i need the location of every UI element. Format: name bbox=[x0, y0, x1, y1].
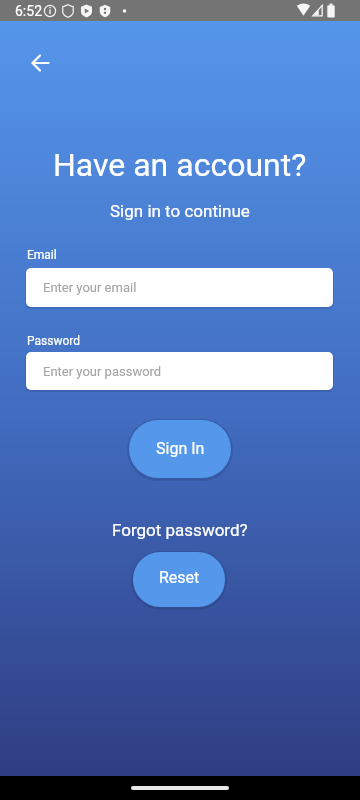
button[interactable]: Reset bbox=[133, 552, 225, 607]
staticText: Reset bbox=[159, 568, 200, 587]
button[interactable] bbox=[16, 39, 64, 87]
staticText: Enter your email bbox=[43, 280, 137, 295]
button[interactable]: Enter your email bbox=[26, 268, 333, 307]
button[interactable]: Enter your password bbox=[26, 352, 333, 390]
staticText: Sign In bbox=[156, 439, 205, 458]
staticText: Enter your password bbox=[43, 364, 162, 379]
staticText: 6:52 bbox=[15, 3, 42, 19]
staticText: Email bbox=[27, 248, 57, 262]
staticText: Forgot password? bbox=[112, 520, 248, 540]
staticText: Have an account? bbox=[53, 146, 307, 184]
staticText: Sign in to continue bbox=[110, 201, 250, 221]
staticText: Password bbox=[27, 334, 81, 348]
button[interactable]: Sign In bbox=[129, 420, 231, 478]
